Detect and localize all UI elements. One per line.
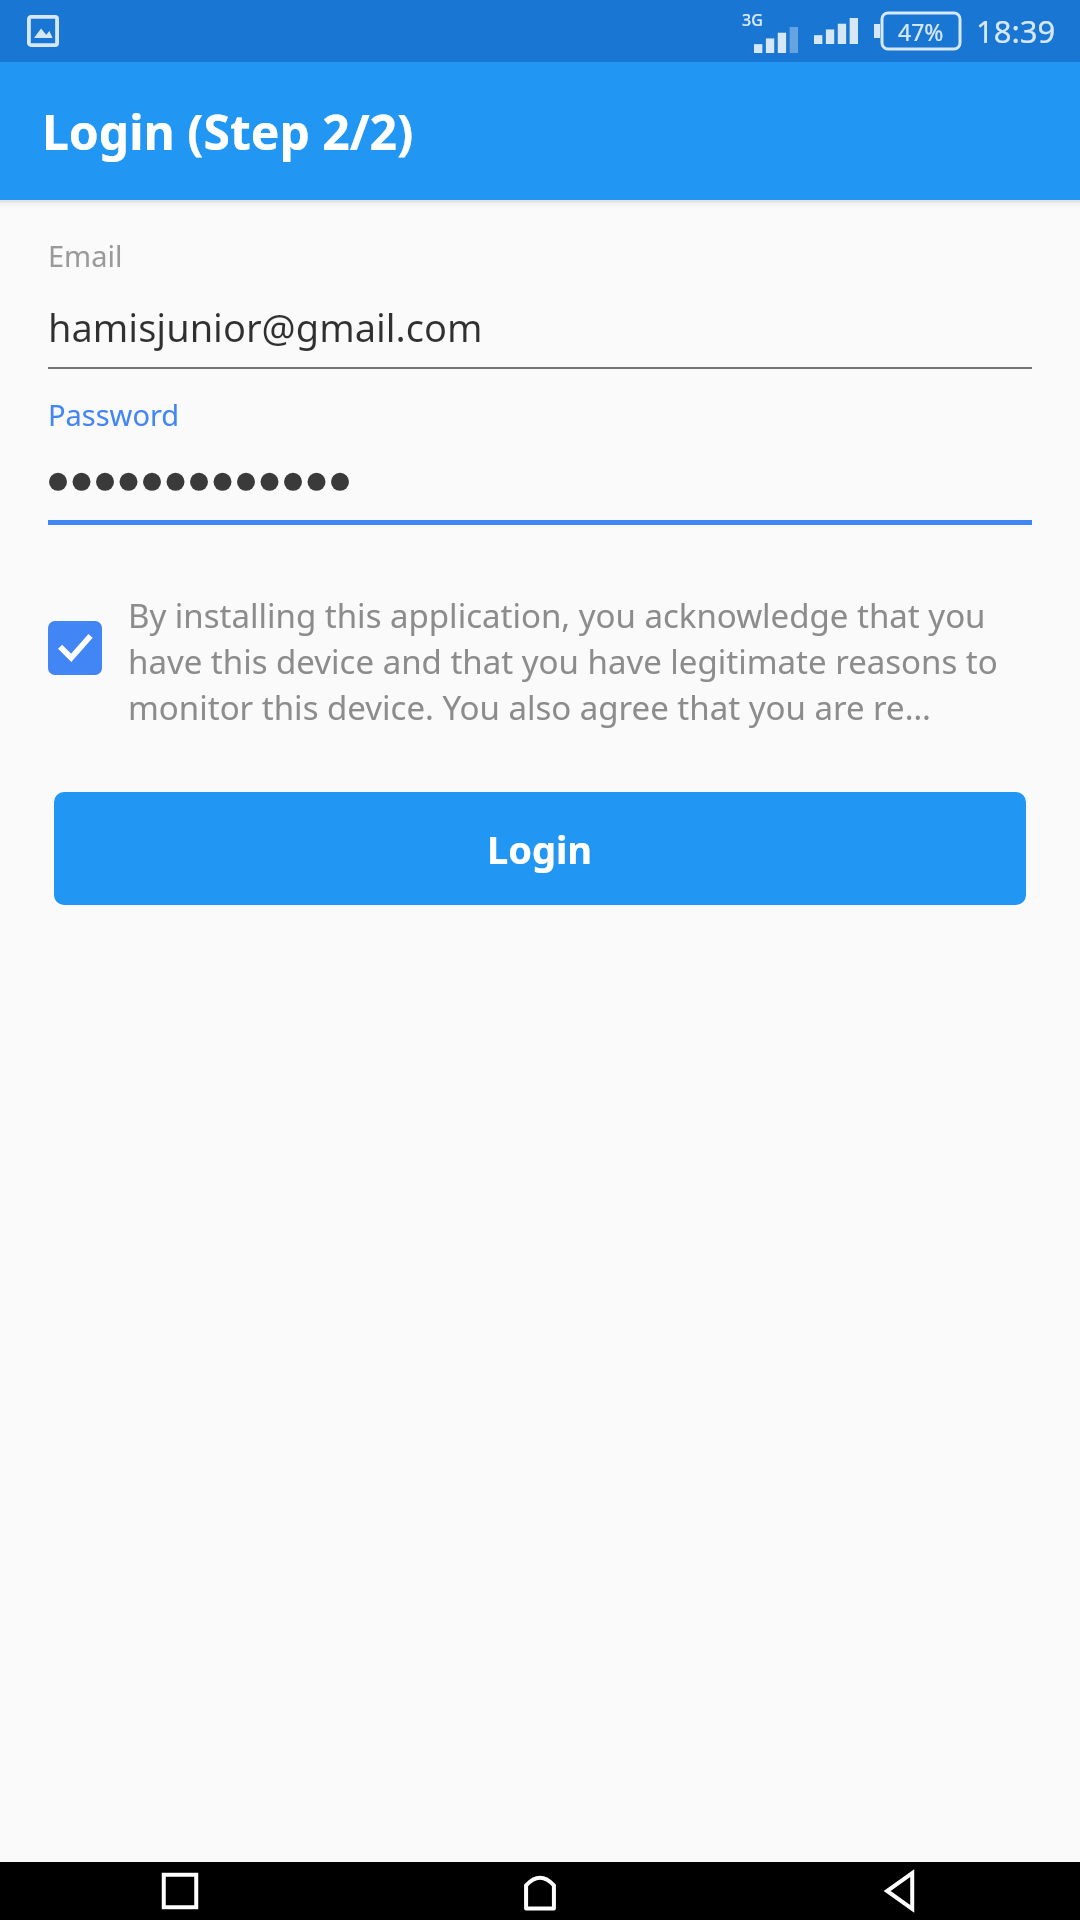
staticText: 3G <box>742 9 763 31</box>
staticText: 47% <box>898 16 944 47</box>
button[interactable]: By installing this application, you ackn… <box>0 593 1080 730</box>
button[interactable]: Email <box>0 236 1080 369</box>
button[interactable]: Login <box>54 792 1026 905</box>
staticText: hamisjunior@gmail.com <box>48 301 483 353</box>
staticText: By installing this application, you ackn… <box>128 593 1040 730</box>
staticText: Password <box>48 395 180 434</box>
staticText: 18:39 <box>976 10 1056 52</box>
button[interactable]: Home <box>360 1862 720 1920</box>
staticText: Login <box>487 823 593 875</box>
button[interactable]: Back <box>720 1862 1080 1920</box>
button[interactable]: Password <box>0 395 1080 525</box>
staticText: Email <box>48 236 123 275</box>
button[interactable]: Recent apps <box>0 1862 360 1920</box>
staticText: Login (Step 2/2) <box>42 99 414 164</box>
